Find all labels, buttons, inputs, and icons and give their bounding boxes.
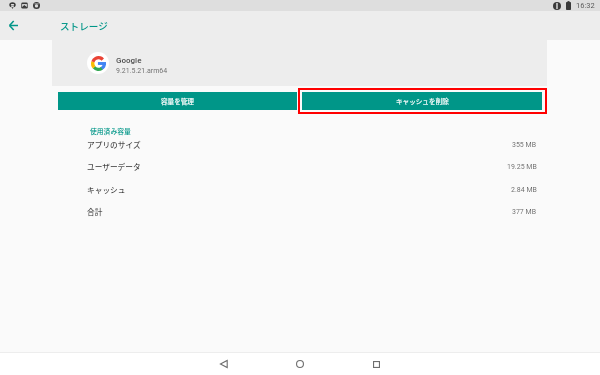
button[interactable]: ユーザーデータ xyxy=(0,155,600,177)
button[interactable]: キャッシュを削除 xyxy=(302,92,542,110)
staticText: 2.84 MB xyxy=(511,186,537,194)
staticText: 377 MB xyxy=(512,208,537,216)
staticText: 使用済み容量 xyxy=(90,126,131,136)
button[interactable]: Recent apps xyxy=(361,353,391,375)
button[interactable]: Back xyxy=(5,17,22,34)
staticText: アプリのサイズ xyxy=(87,139,141,150)
button[interactable]: アプリのサイズ xyxy=(0,133,600,155)
staticText: 19.25 MB xyxy=(507,163,537,171)
staticText: 355 MB xyxy=(512,141,537,149)
staticText: ユーザーデータ xyxy=(87,161,141,172)
staticText: キャッシュを削除 xyxy=(396,96,449,106)
staticText: キャッシュ xyxy=(87,184,126,195)
button[interactable]: 容量を管理 xyxy=(58,92,297,110)
staticText: 容量を管理 xyxy=(161,96,194,106)
staticText: 9.21.5.21.arm64 xyxy=(116,67,168,75)
button[interactable]: キャッシュ xyxy=(0,178,600,200)
staticText: 16:32 xyxy=(576,1,595,10)
button[interactable]: 合計 xyxy=(0,200,600,222)
staticText: ストレージ xyxy=(60,19,108,33)
staticText: Google xyxy=(116,56,142,65)
button[interactable]: Back xyxy=(209,353,239,375)
button[interactable]: Home xyxy=(285,353,315,375)
staticText: 合計 xyxy=(87,206,103,217)
